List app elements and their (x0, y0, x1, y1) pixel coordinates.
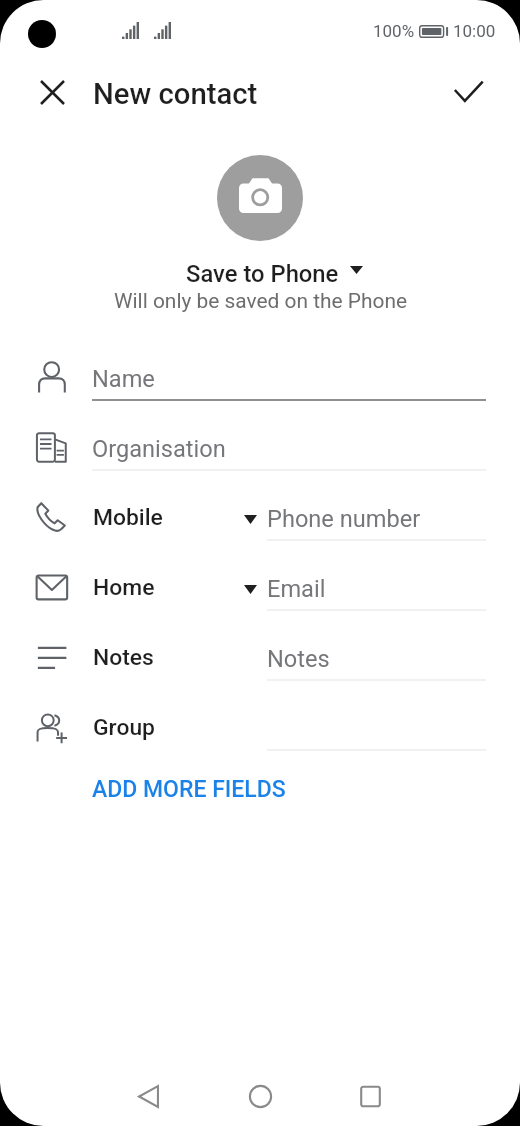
staticText: Save to Phone (186, 260, 339, 288)
button[interactable]: ADD MORE FIELDS (92, 763, 286, 813)
staticText: Organisation (92, 435, 226, 463)
staticText: Group (93, 714, 155, 741)
button[interactable]: Home (0, 553, 520, 623)
staticText: Phone number (267, 505, 421, 533)
button[interactable]: Recent apps (342, 1068, 398, 1124)
button[interactable]: Mobile (0, 483, 520, 553)
button[interactable]: Organisation (0, 413, 520, 483)
staticText: ADD MORE FIELDS (92, 776, 286, 803)
staticText: Notes (267, 645, 330, 673)
staticText: Mobile (93, 504, 163, 531)
button[interactable]: Group (0, 693, 520, 763)
button[interactable]: Close (28, 68, 76, 116)
staticText: Home (93, 574, 155, 601)
button[interactable]: Home (232, 1068, 288, 1124)
staticText: 100% (373, 21, 415, 41)
button[interactable]: Add photo (217, 155, 303, 241)
staticText: 10:00 (453, 21, 496, 41)
button[interactable]: Notes (0, 623, 520, 693)
button[interactable]: Name (0, 343, 520, 413)
staticText: Name (92, 365, 155, 393)
staticText: Notes (93, 644, 154, 671)
button[interactable]: Save contact (445, 68, 491, 114)
button[interactable]: Back (120, 1068, 176, 1124)
staticText: Will only be saved on the Phone (114, 289, 408, 313)
staticText: New contact (93, 77, 258, 111)
button[interactable]: Save to Phone (186, 260, 363, 288)
staticText: Email (267, 575, 326, 603)
